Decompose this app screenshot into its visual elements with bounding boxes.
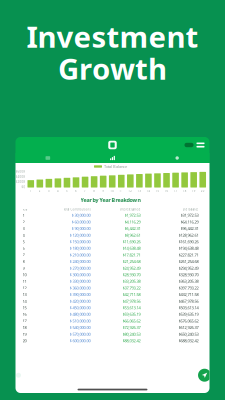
staticText: $33,205.38 xyxy=(122,279,140,284)
staticText: 3 xyxy=(22,226,24,231)
staticText: $ 150,000.00 xyxy=(69,239,90,244)
staticText: $28,930.70 xyxy=(122,272,140,277)
staticText: 8 xyxy=(93,189,95,193)
staticText: 10 xyxy=(22,272,26,277)
staticText: $ 270,000.00 xyxy=(69,265,90,271)
staticText: $14,638.48 xyxy=(122,246,140,251)
button[interactable]: Summary xyxy=(15,153,80,163)
staticText: $ 540,000.00 xyxy=(69,325,90,330)
staticText: $66,065.62 xyxy=(122,318,140,323)
button[interactable]: Settings xyxy=(145,153,209,163)
staticText: $ 240,000.00 xyxy=(69,259,90,264)
button[interactable]: Account xyxy=(184,143,193,147)
staticText: Total Balance xyxy=(104,164,127,169)
staticText: 2 xyxy=(39,189,41,193)
staticText: 19 xyxy=(192,189,196,193)
staticText: $ 300,000.00 xyxy=(69,272,90,277)
staticText: Investment xyxy=(26,17,198,56)
staticText: $80,240.53 xyxy=(122,331,140,337)
staticText: $ 60,000.00 xyxy=(71,219,90,224)
staticText: $612,926.37 xyxy=(178,325,198,330)
staticText: $ 510,000.00 xyxy=(69,318,90,323)
staticText: $64,116.29 xyxy=(180,219,198,224)
staticText: $ 390,000.00 xyxy=(69,292,90,297)
staticText: $42,711.58 xyxy=(122,292,140,297)
staticText: 1 xyxy=(30,189,32,193)
staticText: 16 xyxy=(22,312,26,317)
staticText: $31,972.53 xyxy=(180,213,198,218)
staticText: 3 xyxy=(48,189,50,193)
staticText: Year by Year Breakdown xyxy=(80,196,140,204)
staticText: 11 xyxy=(119,189,123,193)
staticText: $88,032.42 xyxy=(122,338,140,343)
staticText: $ 420,000.00 xyxy=(69,298,90,304)
staticText: $8,962.61 xyxy=(124,232,140,238)
staticText: $194,638.48 xyxy=(178,246,198,251)
staticText: 13 xyxy=(22,292,26,297)
staticText: 14 xyxy=(22,298,26,304)
staticText: 7 xyxy=(22,252,24,257)
staticText: $6,442.31 xyxy=(124,226,140,231)
staticText: $576,065.62 xyxy=(178,318,198,323)
staticText: $ 210,000.00 xyxy=(69,252,90,257)
staticText: $600K xyxy=(15,170,25,173)
staticText: 20 xyxy=(201,189,205,193)
button[interactable]: Chart xyxy=(80,153,145,163)
staticText: $400K xyxy=(15,175,25,179)
staticText: 15 xyxy=(155,189,159,193)
staticText: 12 xyxy=(22,285,26,290)
staticText: $161,690.26 xyxy=(178,239,198,244)
staticText: 1 xyxy=(22,213,24,218)
staticText: 16 xyxy=(164,189,168,193)
staticText: 6 xyxy=(22,246,24,251)
staticText: 9 xyxy=(102,189,104,193)
button[interactable]: Send xyxy=(198,369,211,382)
staticText: 19 xyxy=(22,331,26,337)
staticText: 7 xyxy=(84,189,86,193)
staticText: $397,793.22 xyxy=(178,285,198,290)
staticText: $688,032.42 xyxy=(178,338,198,343)
staticText: End Balance xyxy=(182,208,198,211)
staticText: 2 xyxy=(22,219,24,224)
staticText: $503,613.14 xyxy=(178,305,198,310)
staticText: 14 xyxy=(146,189,150,193)
staticText: $0 xyxy=(21,185,25,189)
staticText: $1,972.53 xyxy=(124,213,140,218)
staticText: 4 xyxy=(57,189,59,193)
staticText: 17 xyxy=(22,318,26,323)
staticText: Total Contributions xyxy=(63,208,90,211)
staticText: $21,254.68 xyxy=(122,259,140,264)
staticText: $363,205.38 xyxy=(178,279,198,284)
staticText: $328,930.70 xyxy=(178,272,198,277)
staticText: Year xyxy=(22,208,27,211)
staticText: 20 xyxy=(22,338,26,343)
staticText: $ 330,000.00 xyxy=(69,279,90,284)
staticText: $ 480,000.00 xyxy=(69,312,90,317)
staticText: 8 xyxy=(22,259,24,264)
staticText: 18 xyxy=(22,325,26,330)
staticText: $467,978.56 xyxy=(178,298,198,304)
staticText: $37,793.22 xyxy=(122,285,140,290)
staticText: 6 xyxy=(75,189,77,193)
staticText: Growth xyxy=(58,49,167,88)
staticText: $128,962.61 xyxy=(178,232,198,238)
staticText: $ 450,000.00 xyxy=(69,305,90,310)
staticText: 5 xyxy=(66,189,68,193)
staticText: $ 360,000.00 xyxy=(69,285,90,290)
staticText: 17 xyxy=(174,189,178,193)
staticText: 10 xyxy=(110,189,114,193)
staticText: $96,442.31 xyxy=(180,226,198,231)
staticText: $ 180,000.00 xyxy=(69,246,90,251)
button[interactable]: Menu xyxy=(196,142,204,147)
staticText: 4 xyxy=(22,232,24,238)
staticText: 5 xyxy=(22,239,24,244)
staticText: 18 xyxy=(183,189,187,193)
staticText: $53,613.14 xyxy=(122,305,140,310)
staticText: 11 xyxy=(22,279,26,284)
staticText: 13 xyxy=(137,189,141,193)
staticText: $24,952.49 xyxy=(122,265,140,271)
staticText: $11,690.26 xyxy=(122,239,140,244)
staticText: $17,821.71 xyxy=(122,252,140,257)
staticText: $ 120,000.00 xyxy=(69,232,90,238)
staticText: $ 90,000.00 xyxy=(71,226,90,231)
